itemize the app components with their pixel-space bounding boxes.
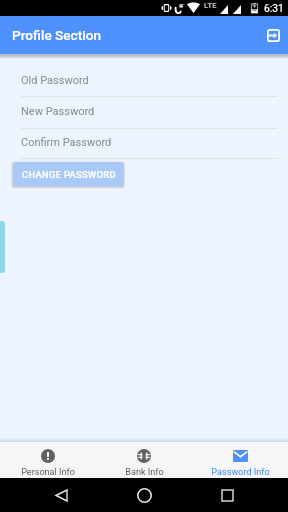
button[interactable]: Personal Info <box>0 442 96 478</box>
button[interactable]: Recents <box>212 480 242 510</box>
staticText: Bank Info <box>125 467 164 478</box>
staticText: Profile Section <box>12 27 101 43</box>
button[interactable]: Bank Info <box>96 442 192 478</box>
button[interactable]: Password Info <box>192 442 288 478</box>
staticText: New Password <box>21 105 95 118</box>
staticText: Personal Info <box>21 467 75 478</box>
button[interactable]: Home <box>129 480 159 510</box>
staticText: CHANGE PASSWORD <box>22 169 116 180</box>
button[interactable]: CHANGE PASSWORD <box>13 162 124 186</box>
staticText: Password Info <box>211 467 270 478</box>
staticText: 6:31 <box>264 2 284 14</box>
staticText: Old Password <box>21 74 89 87</box>
button[interactable]: Logout <box>260 22 286 48</box>
staticText: Confirm Password <box>21 136 112 149</box>
staticText: LTE <box>204 1 217 10</box>
button[interactable]: Back <box>46 480 76 510</box>
